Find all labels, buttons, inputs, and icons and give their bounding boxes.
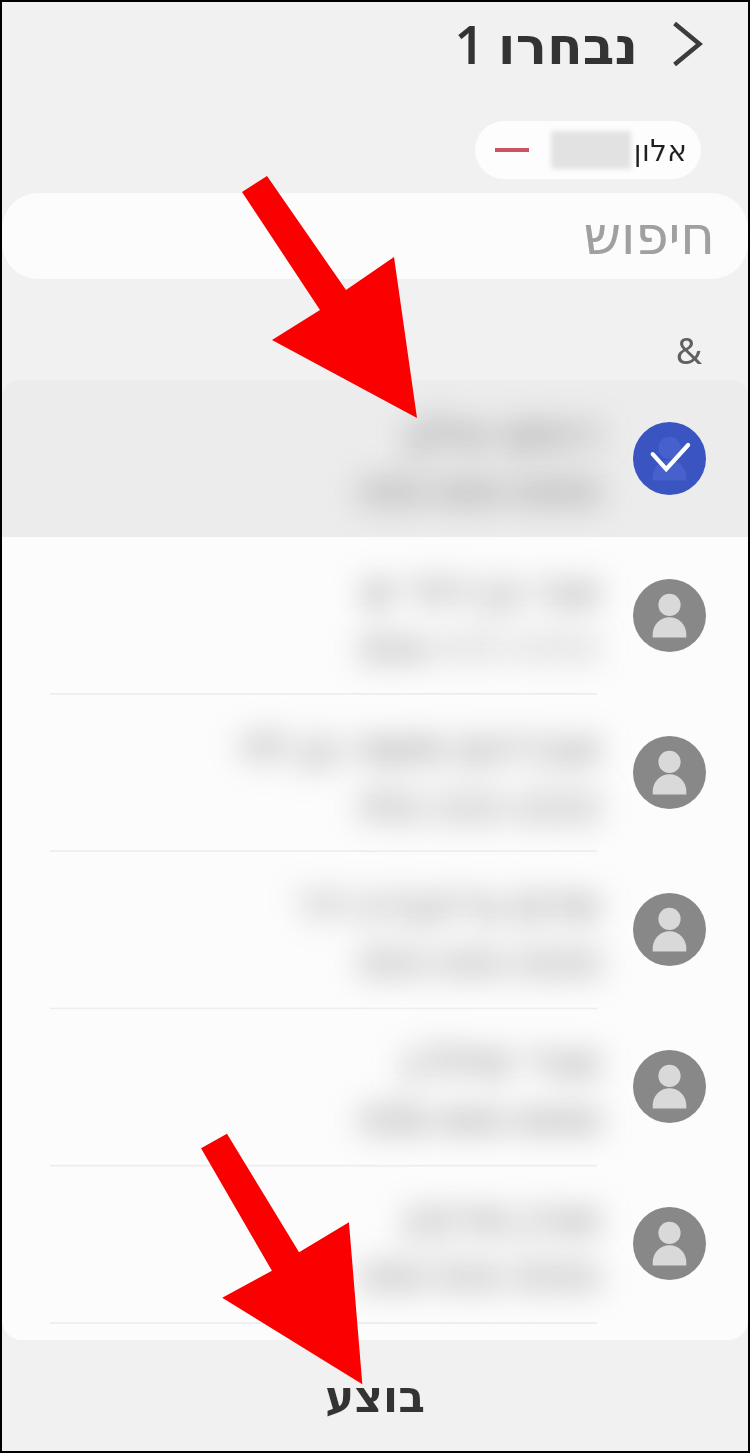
staticText: 053-333-3333 (359, 936, 601, 988)
button[interactable]: 1 נבחרו (454, 8, 710, 79)
staticText: 058-444-4444 (359, 1093, 601, 1145)
button[interactable]: אורן פרץין (2, 1165, 748, 1322)
staticText: בוצע (325, 1371, 425, 1422)
staticText: אברהם משה בן לוי (239, 714, 601, 777)
staticText: 050-555-5555 (359, 1250, 601, 1302)
staticText: אורי מילרן (403, 1028, 601, 1091)
staticText: חיפוש (583, 205, 715, 267)
button[interactable]: אורי מילרן (2, 1008, 748, 1165)
staticText: רותם אלון (407, 400, 601, 463)
staticText: 050-000-0000 (359, 465, 601, 517)
staticText: 1 נבחרו (454, 8, 638, 79)
button[interactable]: בוצע (2, 1341, 748, 1451)
button[interactable]: אדם גרינברג דר (2, 851, 748, 1008)
button[interactable]: אברהם משה בן לוי (2, 694, 748, 851)
staticText: אבי בן דוד ש (363, 557, 601, 620)
staticText: אורן פרץין (404, 1185, 601, 1248)
staticText: 052-222-2222 (359, 779, 601, 831)
button[interactable]: אבי בן דוד ש (2, 537, 748, 694)
button[interactable]: אלון (475, 121, 701, 179)
staticText: 054-111-1111 (359, 622, 601, 674)
button[interactable]: חיפוש (2, 193, 748, 279)
staticText: אדם גרינברג דר (294, 871, 601, 934)
button[interactable]: רותם אלון (2, 380, 748, 537)
staticText: & (675, 326, 702, 375)
other: Expand selected (664, 21, 710, 67)
staticText: אלון (633, 133, 687, 168)
